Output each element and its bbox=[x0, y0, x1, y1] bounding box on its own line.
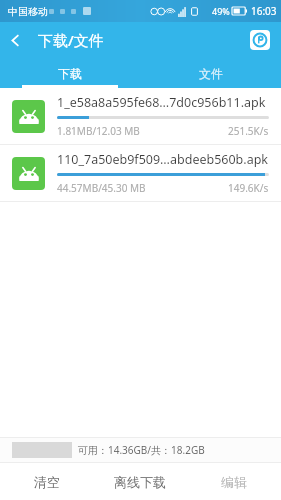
staticText: 可用：14.36GB/共：18.2GB bbox=[78, 443, 205, 457]
staticText: 44.57MB/45.30 MB bbox=[57, 181, 146, 195]
button[interactable]: Back bbox=[0, 25, 30, 55]
staticText: 1.81MB/12.03 MB bbox=[57, 124, 140, 138]
staticText: 110_7a50eb9f509…abdeeb560b.apk bbox=[57, 151, 269, 168]
button[interactable]: 下载 bbox=[0, 58, 140, 88]
staticText: 149.6K/s bbox=[228, 181, 269, 195]
staticText: 离线下载 bbox=[114, 474, 166, 490]
staticText: 下载/文件 bbox=[38, 30, 104, 50]
button[interactable]: App logo bbox=[247, 27, 273, 53]
staticText: 文件 bbox=[199, 66, 223, 81]
button[interactable]: 1_e58a8a595fe68…7d0c956b11.apk bbox=[0, 88, 281, 145]
staticText: 251.5K/s bbox=[228, 124, 269, 138]
staticText: 清空 bbox=[34, 474, 60, 490]
button[interactable]: 离线下载 bbox=[93, 463, 187, 500]
staticText: 49% bbox=[212, 5, 230, 17]
staticText: 中国移动 bbox=[8, 5, 48, 18]
button[interactable]: 编辑 bbox=[187, 463, 281, 500]
staticText: 下载 bbox=[58, 66, 82, 81]
staticText: 16:03 bbox=[251, 4, 277, 18]
button[interactable]: 110_7a50eb9f509…abdeeb560b.apk bbox=[0, 145, 281, 202]
staticText: 1_e58a8a595fe68…7d0c956b11.apk bbox=[57, 94, 266, 111]
button[interactable]: 清空 bbox=[0, 463, 93, 500]
button[interactable]: 文件 bbox=[140, 58, 281, 88]
staticText: 编辑 bbox=[221, 474, 247, 490]
